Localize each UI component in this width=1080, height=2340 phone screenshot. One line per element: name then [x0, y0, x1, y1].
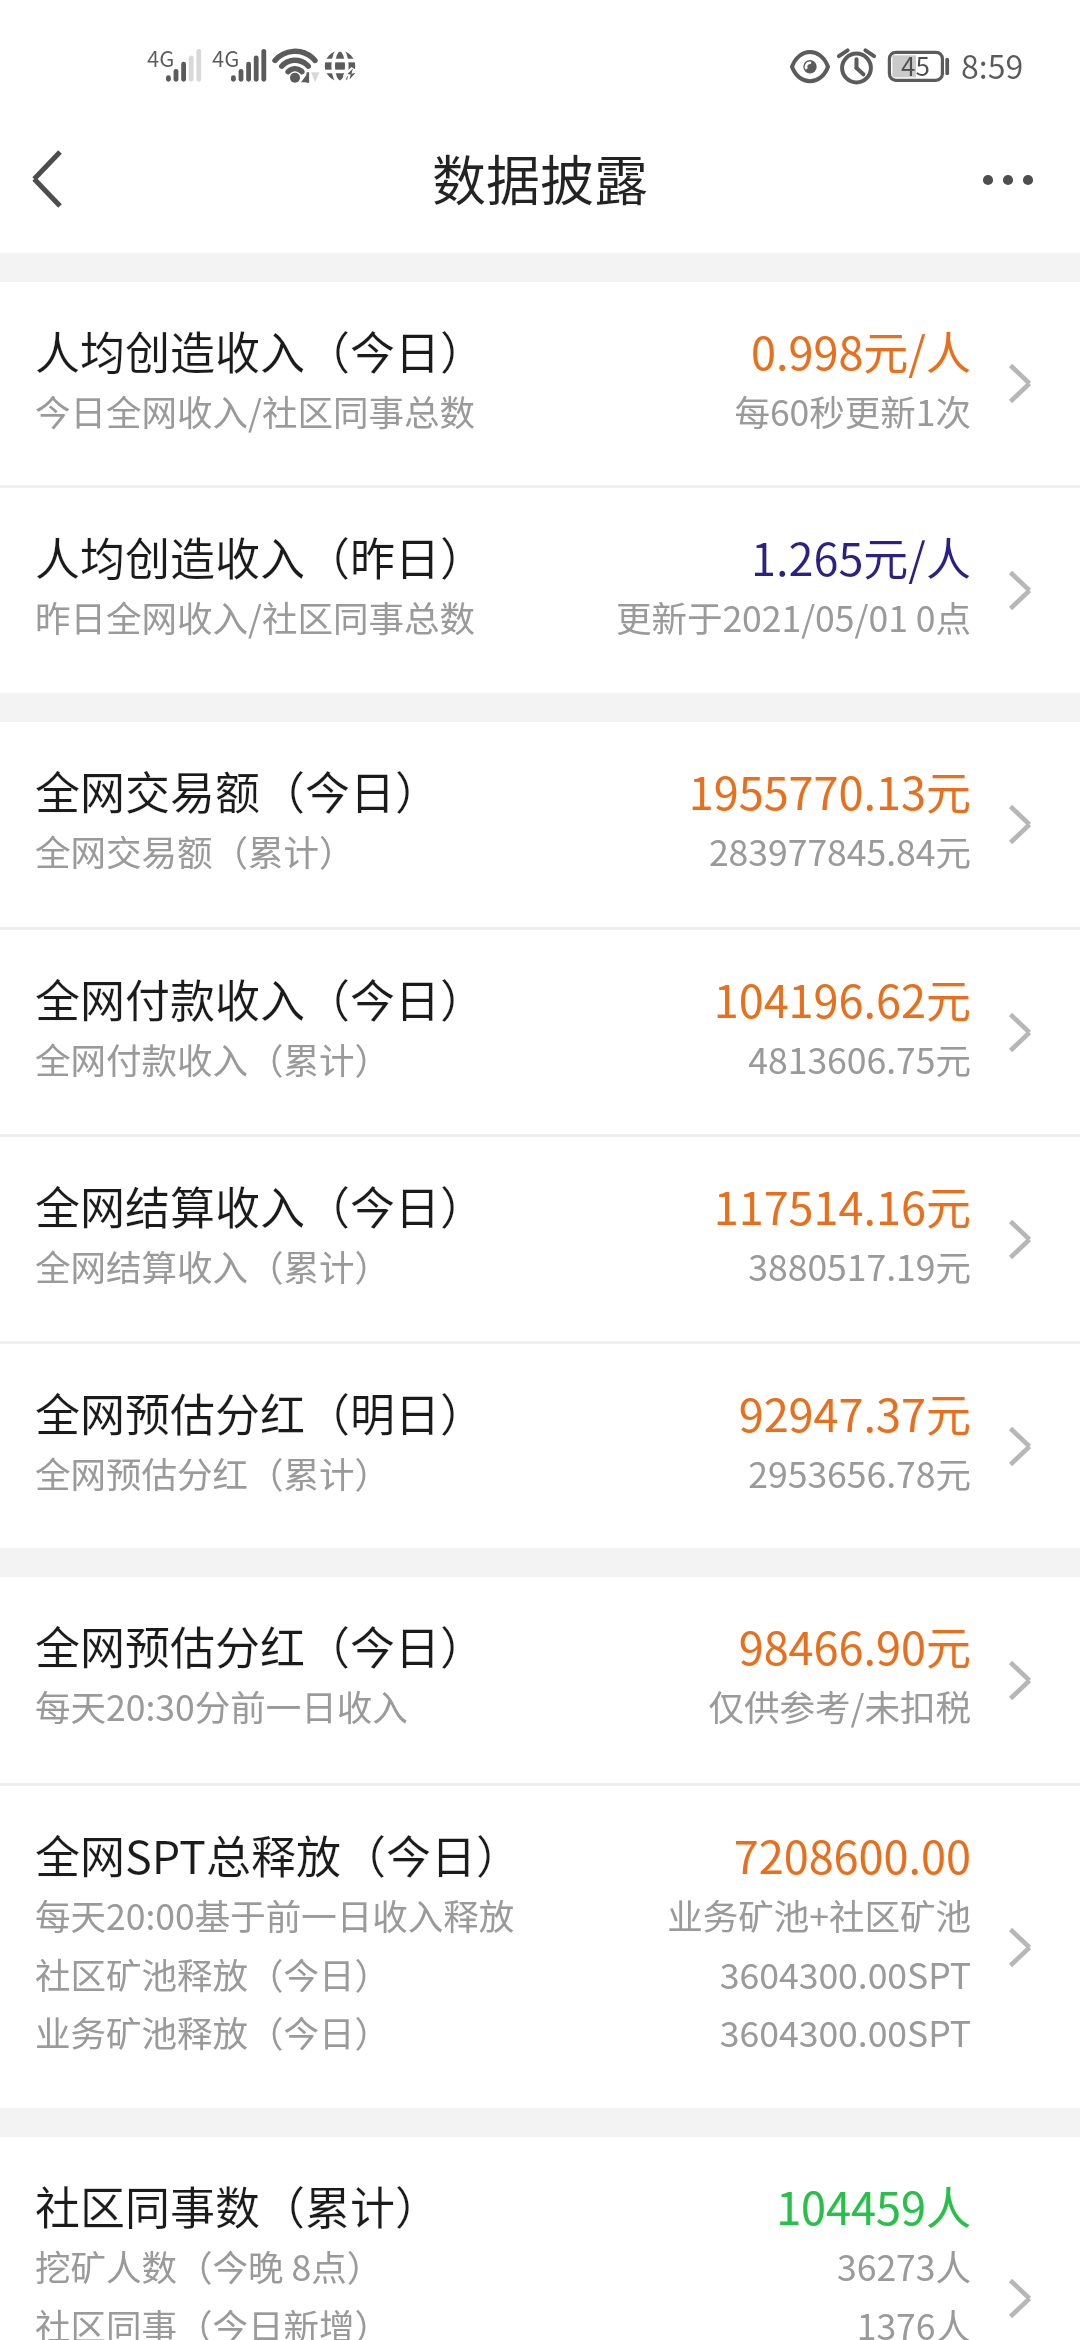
staticText: 昨日全网收入/社区同事总数 — [35, 591, 475, 642]
staticText: 全网结算收入（累计） — [35, 1240, 391, 1291]
staticText: 业务矿池释放（今日） — [35, 2006, 391, 2057]
staticText: 2953656.78元 — [748, 1447, 971, 1498]
button[interactable]: 人均创造收入（今日） — [0, 282, 1080, 485]
button[interactable]: 人均创造收入（昨日） — [0, 488, 1080, 693]
staticText: 3604300.00SPT — [719, 2006, 971, 2057]
staticText: 1955770.13元 — [688, 758, 971, 823]
button[interactable]: 社区同事数（累计） — [0, 2137, 1080, 2340]
staticText: 业务矿池+社区矿池 — [667, 1889, 971, 1940]
staticText: 人均创造收入（昨日） — [35, 524, 486, 589]
button[interactable]: 全网付款收入（今日） — [0, 930, 1080, 1134]
staticText: 7208600.00 — [733, 1822, 971, 1887]
button[interactable]: More options — [963, 110, 1080, 253]
staticText: 117514.16元 — [713, 1173, 971, 1238]
button[interactable]: 全网SPT总释放（今日） — [0, 1786, 1080, 2108]
staticText: 104196.62元 — [713, 966, 971, 1031]
staticText: 4G — [212, 41, 240, 73]
staticText: 每天20:30分前一日收入 — [35, 1680, 408, 1731]
staticText: 1.265元/人 — [750, 524, 971, 589]
staticText: 全网付款收入（累计） — [35, 1033, 391, 1084]
staticText: 全网预估分红（累计） — [35, 1447, 391, 1498]
staticText: 全网付款收入（今日） — [35, 966, 486, 1031]
staticText: 3604300.00SPT — [719, 1948, 971, 1999]
staticText: 全网预估分红（明日） — [35, 1380, 486, 1445]
staticText: 45 — [901, 46, 930, 84]
staticText: 0.998元/人 — [750, 318, 971, 383]
button[interactable]: 全网交易额（今日） — [0, 722, 1080, 927]
staticText: 数据披露 — [432, 138, 648, 216]
staticText: 全网结算收入（今日） — [35, 1173, 486, 1238]
staticText: 社区矿池释放（今日） — [35, 1948, 391, 1999]
staticText: 今日全网收入/社区同事总数 — [35, 385, 475, 436]
staticText: 每60秒更新1次 — [734, 385, 971, 436]
staticText: 92947.37元 — [738, 1380, 971, 1445]
staticText: 36273人 — [836, 2240, 971, 2291]
button[interactable]: 全网结算收入（今日） — [0, 1137, 1080, 1341]
staticText: 全网SPT总释放（今日） — [35, 1822, 522, 1887]
staticText: 全网交易额（累计） — [35, 825, 355, 876]
staticText: 更新于2021/05/01 0点 — [615, 591, 971, 642]
staticText: 283977845.84元 — [708, 825, 971, 876]
staticText: 社区同事（今日新增） — [35, 2299, 391, 2340]
staticText: 4G — [147, 41, 175, 73]
staticText: 人均创造收入（今日） — [35, 318, 486, 383]
button[interactable]: Back — [0, 110, 100, 253]
staticText: 社区同事数（累计） — [35, 2173, 441, 2238]
staticText: 104459人 — [776, 2173, 971, 2238]
button[interactable]: 全网预估分红（明日） — [0, 1344, 1080, 1548]
staticText: 4813606.75元 — [748, 1033, 971, 1084]
staticText: 全网交易额（今日） — [35, 758, 441, 823]
staticText: 1376人 — [856, 2299, 971, 2340]
staticText: 98466.90元 — [738, 1613, 971, 1678]
staticText: 全网预估分红（今日） — [35, 1613, 486, 1678]
staticText: 每天20:00基于前一日收入释放 — [35, 1889, 515, 1940]
staticText: 仅供参考/未扣税 — [708, 1680, 971, 1731]
staticText: 8:59 — [961, 42, 1024, 88]
button[interactable]: 全网预估分红（今日） — [0, 1577, 1080, 1783]
staticText: 挖矿人数（今晚 8点） — [35, 2240, 383, 2291]
staticText: 3880517.19元 — [748, 1240, 971, 1291]
